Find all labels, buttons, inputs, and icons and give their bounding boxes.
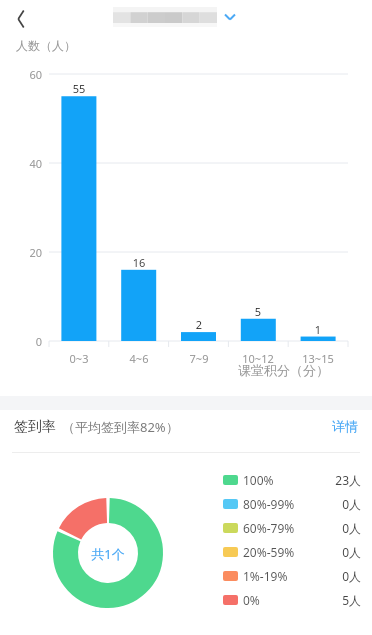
button[interactable] [113, 7, 237, 27]
staticText: 签到率 [14, 418, 56, 436]
staticText: 0~3 [49, 351, 109, 366]
staticText: 2 [179, 317, 219, 332]
button[interactable]: 1%-19% [223, 564, 361, 588]
staticText: 7~9 [169, 351, 229, 366]
staticText: 0人 [327, 568, 361, 584]
staticText: 详情 [332, 418, 358, 434]
staticText: 0人 [327, 544, 361, 560]
staticText: 1%-19% [243, 568, 288, 584]
staticText: 20 [6, 245, 42, 260]
staticText: 0% [243, 592, 260, 608]
staticText: 20%-59% [243, 544, 295, 560]
button[interactable]: 80%-99% [223, 492, 361, 516]
staticText: （平均签到率82%） [62, 418, 179, 436]
staticText: 100% [243, 472, 274, 488]
staticText: 课堂积分（分） [238, 362, 329, 378]
button[interactable]: 0% [223, 588, 361, 612]
staticText: 55 [59, 81, 99, 96]
staticText: 0人 [327, 496, 361, 512]
staticText: 80%-99% [243, 496, 295, 512]
staticText: 16 [119, 255, 159, 270]
button[interactable]: 100% [223, 468, 361, 492]
staticText: 共1个 [78, 545, 138, 563]
staticText: 40 [6, 156, 42, 171]
staticText: 5 [238, 304, 278, 319]
staticText: 0 [6, 334, 42, 349]
staticText: 5人 [327, 592, 361, 608]
staticText: 23人 [327, 472, 361, 488]
staticText: 4~6 [109, 351, 169, 366]
button[interactable]: Back [4, 2, 38, 36]
button[interactable]: 20%-59% [223, 540, 361, 564]
staticText: 人数（人） [16, 38, 76, 53]
button[interactable]: 详情 [326, 412, 364, 440]
staticText: 60 [6, 67, 42, 82]
staticText: 1 [298, 322, 338, 337]
staticText: 0人 [327, 520, 361, 536]
staticText: 13~15 [288, 351, 348, 366]
staticText: 60%-79% [243, 520, 295, 536]
staticText: 10~12 [228, 351, 288, 366]
button[interactable]: 60%-79% [223, 516, 361, 540]
